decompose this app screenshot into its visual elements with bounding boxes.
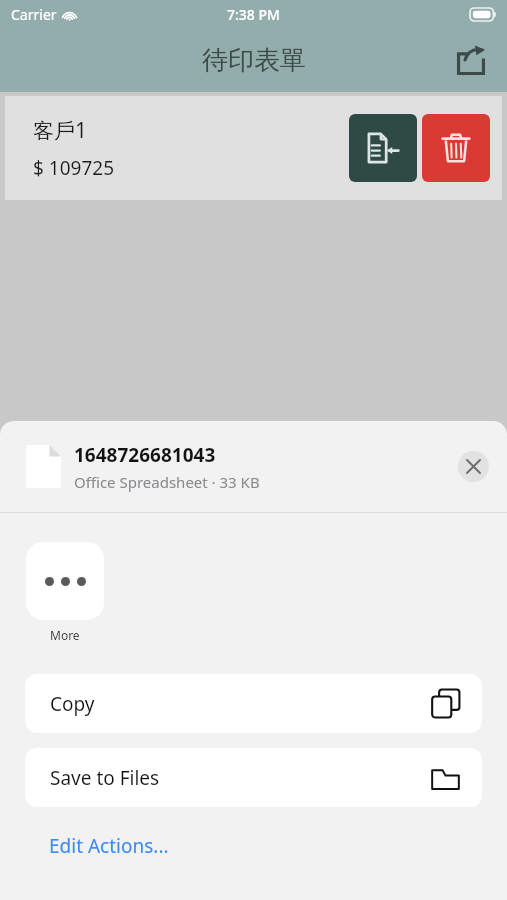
staticText: Carrier bbox=[11, 5, 57, 24]
staticText: 1648726681043 bbox=[74, 442, 216, 468]
button[interactable]: Edit Actions... bbox=[0, 825, 507, 867]
staticText: 客戶1 bbox=[33, 116, 88, 145]
staticText: Edit Actions... bbox=[49, 833, 169, 859]
button[interactable]: Share bbox=[449, 38, 493, 82]
button[interactable]: 客戶1 bbox=[5, 96, 502, 200]
button[interactable]: Delete bbox=[422, 114, 490, 182]
staticText: Copy bbox=[50, 691, 95, 717]
button[interactable]: Save to Files bbox=[25, 748, 482, 807]
staticText: 待印表單 bbox=[202, 44, 306, 77]
staticText: 7:38 PM bbox=[227, 5, 280, 24]
button[interactable]: 1648726681043 bbox=[0, 421, 507, 512]
staticText: Save to Files bbox=[50, 765, 160, 791]
button[interactable]: More bbox=[25, 542, 105, 643]
button[interactable]: Export bbox=[349, 114, 417, 182]
staticText: Office Spreadsheet · 33 KB bbox=[74, 472, 260, 492]
staticText: More bbox=[50, 627, 80, 643]
staticText: $ 109725 bbox=[33, 155, 115, 181]
button[interactable]: Close bbox=[458, 451, 489, 482]
button[interactable]: Copy bbox=[25, 674, 482, 733]
